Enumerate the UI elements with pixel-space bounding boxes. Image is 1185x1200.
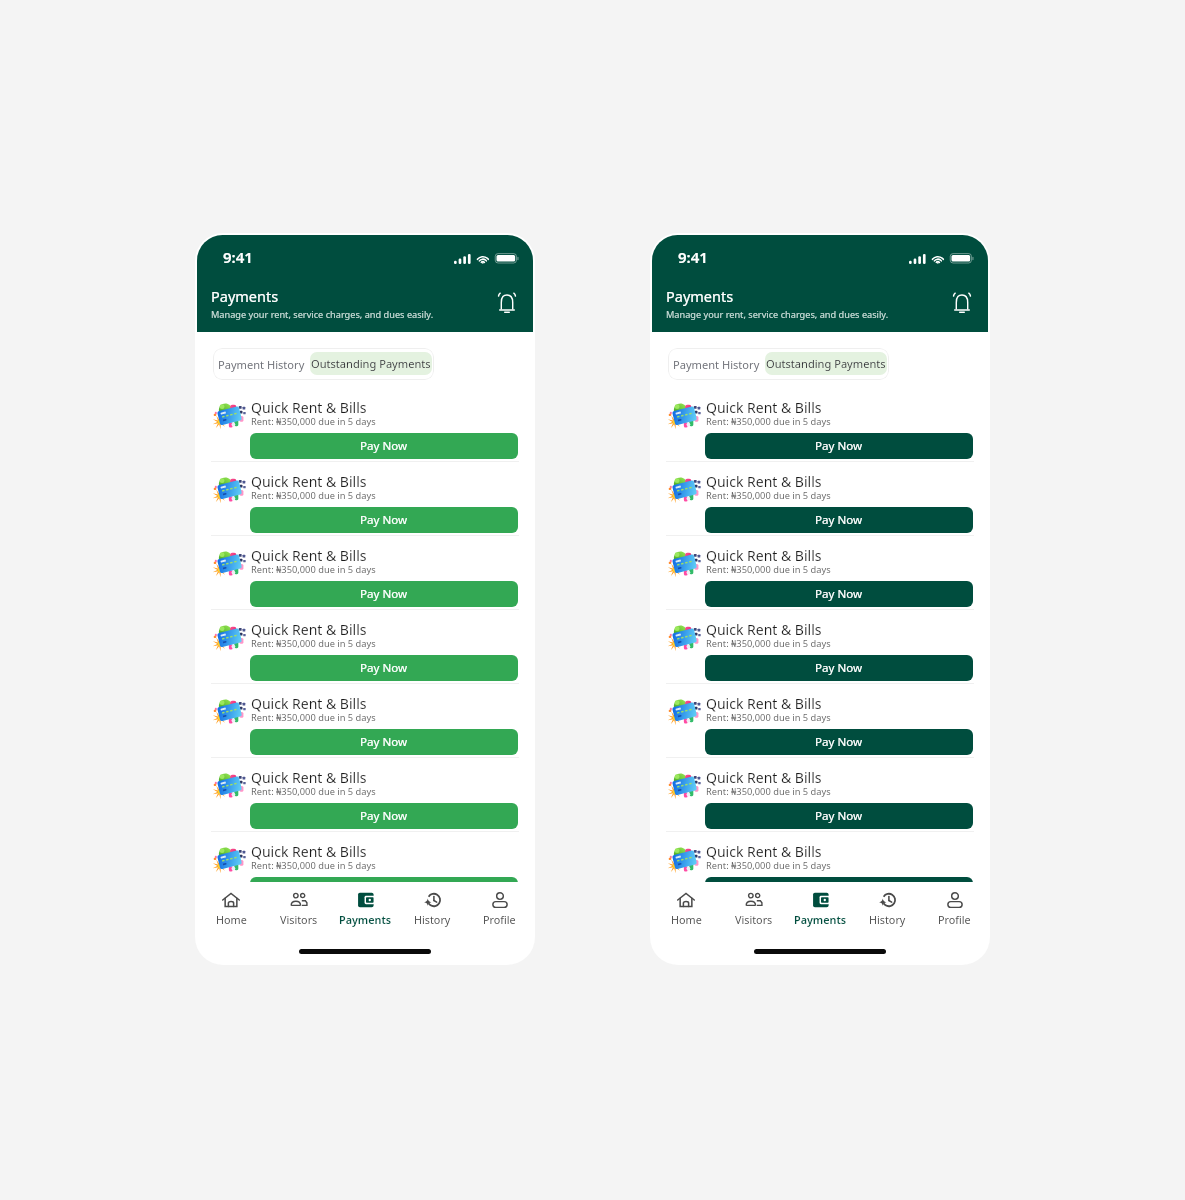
button[interactable]: Profile xyxy=(921,891,988,927)
button[interactable]: Quick Rent & Bills xyxy=(652,684,988,758)
staticText: Payments xyxy=(339,912,392,927)
staticText: Rent: ₦350,000 due in 5 days xyxy=(706,563,831,576)
button[interactable]: Outstanding Payments xyxy=(765,352,887,375)
staticText: Pay Now xyxy=(360,734,408,750)
staticText: Rent: ₦350,000 due in 5 days xyxy=(251,415,376,428)
button[interactable]: Quick Rent & Bills xyxy=(197,462,533,536)
staticText: Manage your rent, service charges, and d… xyxy=(211,308,434,321)
button[interactable]: Payment History xyxy=(214,349,309,379)
staticText: Payment History xyxy=(218,357,305,372)
staticText: Manage your rent, service charges, and d… xyxy=(666,308,889,321)
staticText: Quick Rent & Bills xyxy=(251,472,367,491)
staticText: Rent: ₦350,000 due in 5 days xyxy=(706,859,831,872)
button[interactable]: Pay Now xyxy=(250,803,518,829)
staticText: Pay Now xyxy=(815,660,863,676)
button[interactable]: Quick Rent & Bills xyxy=(197,832,533,883)
staticText: 9:41 xyxy=(223,247,253,267)
staticText: Payments xyxy=(666,286,734,306)
staticText: Outstanding Payments xyxy=(766,356,886,371)
button[interactable]: Pay Now xyxy=(250,581,518,607)
staticText: Visitors xyxy=(280,912,318,927)
button[interactable]: Pay Now xyxy=(250,433,518,459)
button[interactable]: Quick Rent & Bills xyxy=(197,684,533,758)
button[interactable]: Notifications xyxy=(946,286,978,318)
staticText: Rent: ₦350,000 due in 5 days xyxy=(706,415,831,428)
staticText: Pay Now xyxy=(815,734,863,750)
staticText: Rent: ₦350,000 due in 5 days xyxy=(251,785,376,798)
button[interactable]: Quick Rent & Bills xyxy=(197,388,533,462)
staticText: Quick Rent & Bills xyxy=(706,398,822,417)
button[interactable]: Quick Rent & Bills xyxy=(652,388,988,462)
staticText: 9:41 xyxy=(678,247,708,267)
button[interactable]: Pay Now xyxy=(705,655,973,681)
staticText: Profile xyxy=(938,912,971,927)
staticText: Payment History xyxy=(673,357,760,372)
staticText: History xyxy=(414,912,451,927)
button[interactable]: Quick Rent & Bills xyxy=(652,536,988,610)
button[interactable]: Pay Now xyxy=(705,433,973,459)
button[interactable]: Outstanding Payments xyxy=(310,352,432,375)
button[interactable]: History xyxy=(399,891,466,927)
button[interactable]: Home xyxy=(197,891,265,927)
staticText: Pay Now xyxy=(360,586,408,602)
button[interactable]: Quick Rent & Bills xyxy=(652,758,988,832)
staticText: Quick Rent & Bills xyxy=(706,546,822,565)
staticText: Outstanding Payments xyxy=(311,356,431,371)
staticText: Pay Now xyxy=(815,512,863,528)
staticText: Pay Now xyxy=(815,808,863,824)
button[interactable]: History xyxy=(854,891,921,927)
button[interactable]: Pay Now xyxy=(705,507,973,533)
button[interactable]: Quick Rent & Bills xyxy=(197,536,533,610)
staticText: Quick Rent & Bills xyxy=(251,694,367,713)
button[interactable]: Quick Rent & Bills xyxy=(652,832,988,883)
staticText: Rent: ₦350,000 due in 5 days xyxy=(251,563,376,576)
button[interactable]: Payments xyxy=(787,891,854,927)
staticText: Pay Now xyxy=(360,438,408,454)
staticText: Quick Rent & Bills xyxy=(706,472,822,491)
staticText: Rent: ₦350,000 due in 5 days xyxy=(251,637,376,650)
button[interactable]: Quick Rent & Bills xyxy=(197,758,533,832)
button[interactable]: Pay Now xyxy=(250,877,518,883)
staticText: Profile xyxy=(483,912,516,927)
button[interactable]: Payments xyxy=(332,891,399,927)
staticText: Quick Rent & Bills xyxy=(251,620,367,639)
staticText: Quick Rent & Bills xyxy=(251,768,367,787)
staticText: Rent: ₦350,000 due in 5 days xyxy=(706,489,831,502)
button[interactable]: Pay Now xyxy=(250,729,518,755)
staticText: Quick Rent & Bills xyxy=(251,546,367,565)
button[interactable]: Quick Rent & Bills xyxy=(652,462,988,536)
staticText: Rent: ₦350,000 due in 5 days xyxy=(706,785,831,798)
staticText: Quick Rent & Bills xyxy=(706,620,822,639)
staticText: Quick Rent & Bills xyxy=(706,768,822,787)
staticText: Visitors xyxy=(735,912,773,927)
button[interactable]: Notifications xyxy=(491,286,523,318)
button[interactable]: Pay Now xyxy=(705,581,973,607)
staticText: Pay Now xyxy=(360,808,408,824)
staticText: Quick Rent & Bills xyxy=(706,694,822,713)
staticText: Pay Now xyxy=(815,586,863,602)
button[interactable]: Home xyxy=(652,891,720,927)
button[interactable]: Pay Now xyxy=(250,507,518,533)
button[interactable]: Visitors xyxy=(265,891,332,927)
staticText: Pay Now xyxy=(360,512,408,528)
staticText: Rent: ₦350,000 due in 5 days xyxy=(251,711,376,724)
button[interactable]: Pay Now xyxy=(705,729,973,755)
staticText: Quick Rent & Bills xyxy=(251,398,367,417)
button[interactable]: Visitors xyxy=(720,891,787,927)
staticText: Payments xyxy=(794,912,847,927)
button[interactable]: Pay Now xyxy=(705,803,973,829)
staticText: Payments xyxy=(211,286,279,306)
staticText: Rent: ₦350,000 due in 5 days xyxy=(706,711,831,724)
button[interactable]: Payment History xyxy=(669,349,764,379)
staticText: Quick Rent & Bills xyxy=(251,842,367,861)
staticText: Home xyxy=(671,912,702,927)
staticText: Rent: ₦350,000 due in 5 days xyxy=(706,637,831,650)
button[interactable]: Pay Now xyxy=(250,655,518,681)
button[interactable]: Quick Rent & Bills xyxy=(652,610,988,684)
staticText: History xyxy=(869,912,906,927)
button[interactable]: Quick Rent & Bills xyxy=(197,610,533,684)
button[interactable]: Profile xyxy=(466,891,533,927)
button[interactable]: Pay Now xyxy=(705,877,973,883)
